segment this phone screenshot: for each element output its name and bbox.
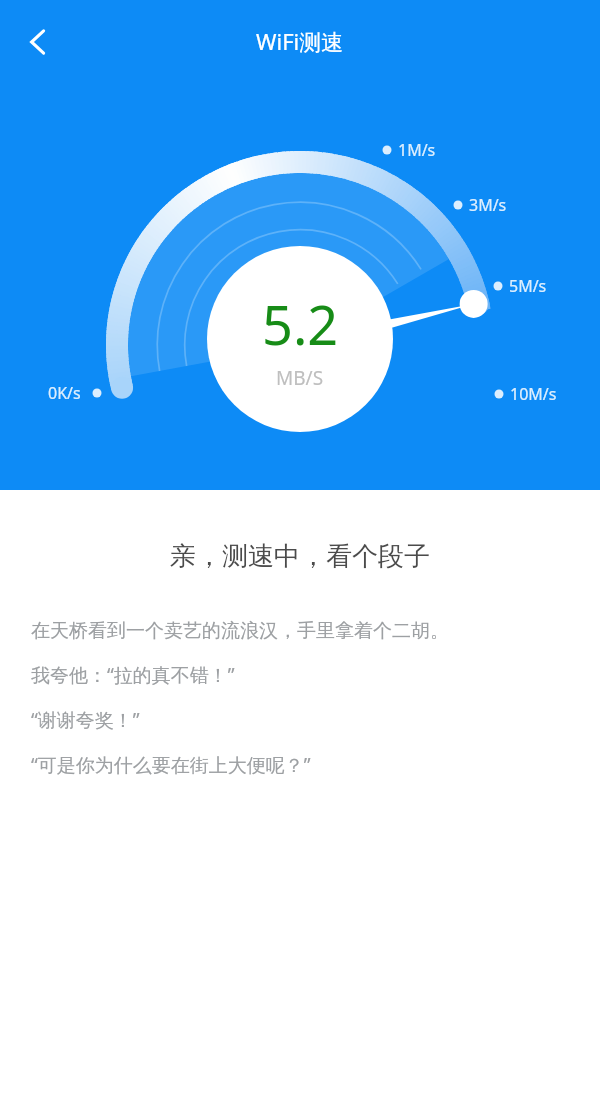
staticText: 亲，测速中，看个段子	[0, 540, 600, 573]
button[interactable]: Back	[8, 12, 68, 72]
staticText: 5M/s	[509, 275, 547, 297]
staticText: “可是你为什么要在街上大便呢？”	[31, 752, 311, 778]
staticText: 0K/s	[48, 382, 81, 404]
staticText: MB/S	[276, 365, 324, 391]
staticText: 1M/s	[398, 139, 436, 161]
staticText: “谢谢夸奖！”	[31, 707, 140, 733]
staticText: 在天桥看到一个卖艺的流浪汉，手里拿着个二胡。	[31, 619, 449, 643]
staticText: WiFi测速	[256, 26, 344, 56]
staticText: 5.2	[262, 287, 339, 361]
staticText: 3M/s	[469, 194, 507, 216]
staticText: 10M/s	[510, 383, 557, 405]
staticText: 我夸他：“拉的真不错！”	[31, 662, 235, 688]
